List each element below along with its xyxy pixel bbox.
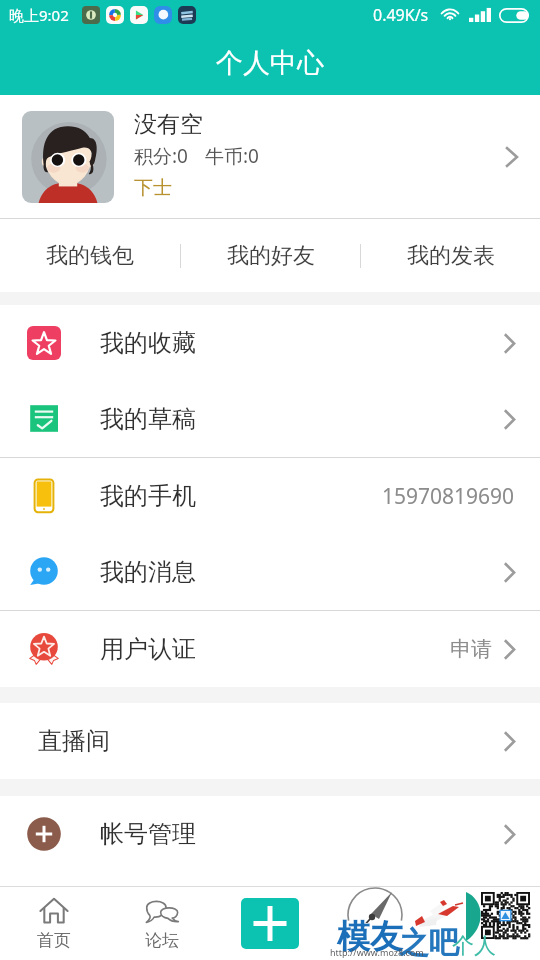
staticText: 牛币:0 bbox=[205, 143, 259, 169]
button[interactable]: 首页 bbox=[0, 887, 108, 960]
staticText: 积分:0 bbox=[134, 143, 188, 169]
staticText: 我的草稿 bbox=[100, 404, 196, 434]
button[interactable]: 用户认证 bbox=[0, 611, 540, 687]
staticText: 帐号管理 bbox=[100, 819, 196, 849]
button[interactable]: 我的钱包 bbox=[0, 219, 180, 292]
staticText: 我的消息 bbox=[100, 557, 196, 587]
staticText: 申请 bbox=[450, 636, 492, 662]
staticText: 之吧 bbox=[398, 923, 460, 960]
button[interactable]: 我的草稿 bbox=[0, 381, 540, 457]
staticText: 晚上9:02 bbox=[9, 5, 69, 25]
staticText: 个人中心 bbox=[216, 46, 324, 80]
staticText: 下士 bbox=[134, 176, 172, 200]
button[interactable]: New post bbox=[241, 898, 299, 949]
button[interactable]: 我的消息 bbox=[0, 534, 540, 610]
staticText: 我的收藏 bbox=[100, 328, 196, 358]
staticText: 首页 bbox=[37, 930, 71, 951]
staticText: 我的钱包 bbox=[46, 242, 134, 270]
staticText: 论坛 bbox=[145, 930, 179, 951]
button[interactable]: 我的手机 bbox=[0, 458, 540, 534]
staticText: 我的手机 bbox=[100, 481, 196, 511]
staticText: 之吧 bbox=[399, 924, 459, 960]
button[interactable]: 论坛 bbox=[108, 887, 216, 960]
button[interactable]: 我的好友 bbox=[181, 219, 360, 292]
staticText: 个人 bbox=[452, 932, 496, 960]
staticText: 我的好友 bbox=[227, 242, 315, 270]
button[interactable]: 我的发表 bbox=[361, 219, 540, 292]
staticText: 0.49K/s bbox=[373, 4, 429, 26]
staticText: http://www.moz8.com bbox=[330, 946, 424, 958]
button[interactable]: 没有空 bbox=[0, 95, 540, 218]
button[interactable]: 直播间 bbox=[0, 703, 540, 779]
staticText: 模友 bbox=[337, 916, 403, 958]
button[interactable]: 帐号管理 bbox=[0, 796, 540, 872]
button[interactable]: 我的收藏 bbox=[0, 305, 540, 381]
staticText: 用户认证 bbox=[100, 634, 196, 664]
staticText: 我的发表 bbox=[407, 242, 495, 270]
staticText: 直播间 bbox=[38, 726, 110, 756]
staticText: 模友 bbox=[336, 915, 404, 958]
staticText: 没有空 bbox=[134, 110, 203, 139]
staticText: 15970819690 bbox=[382, 482, 515, 511]
